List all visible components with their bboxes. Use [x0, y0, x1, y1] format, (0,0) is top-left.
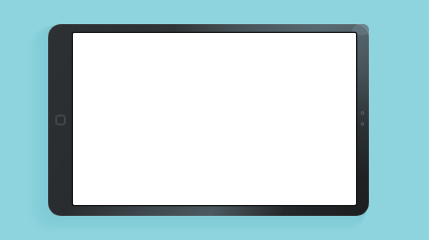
button[interactable]: Sensor: [357, 119, 368, 130]
button[interactable]: Home button: [54, 113, 67, 127]
button[interactable]: Front camera: [357, 108, 368, 119]
